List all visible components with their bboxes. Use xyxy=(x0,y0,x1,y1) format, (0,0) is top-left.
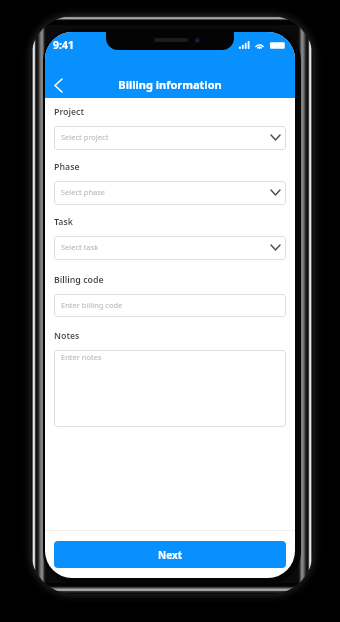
staticText: Select task xyxy=(61,242,99,252)
staticText: Task xyxy=(54,216,73,228)
staticText: Project xyxy=(54,106,85,118)
button[interactable]: Back xyxy=(45,72,71,98)
staticText: Billing code xyxy=(54,274,104,286)
staticText: Notes xyxy=(54,330,80,342)
staticText: Enter billing code xyxy=(61,300,123,310)
button[interactable]: Next xyxy=(54,541,286,568)
staticText: Billing information xyxy=(118,77,222,92)
staticText: 9:41 xyxy=(53,38,74,52)
button[interactable]: Select phase xyxy=(54,181,286,205)
staticText: Next xyxy=(158,548,183,562)
staticText: Phase xyxy=(54,161,80,173)
staticText: Select project xyxy=(61,132,109,142)
button[interactable]: Enter notes xyxy=(54,350,286,427)
button[interactable]: Enter billing code xyxy=(54,294,286,317)
button[interactable]: Select project xyxy=(54,126,286,150)
button[interactable]: Select task xyxy=(54,236,286,260)
staticText: Enter notes xyxy=(61,352,102,362)
staticText: Select phase xyxy=(61,187,106,197)
